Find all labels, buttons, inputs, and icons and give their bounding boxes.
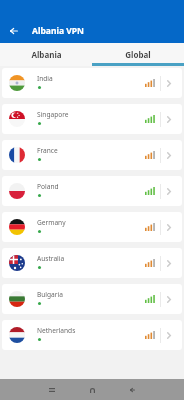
staticText: Poland — [37, 182, 59, 191]
staticText: Albania — [31, 49, 62, 60]
staticText: Singapore — [37, 110, 69, 119]
staticText: Germany — [37, 218, 66, 227]
button[interactable]: Home — [82, 380, 102, 400]
button[interactable]: France — [2, 140, 182, 170]
button[interactable]: Albania — [0, 43, 92, 66]
button[interactable]: Bulgaria — [2, 284, 182, 314]
button[interactable]: India — [2, 68, 182, 98]
staticText: India — [37, 74, 53, 83]
staticText: Albania VPN — [32, 25, 84, 37]
button[interactable]: Back — [122, 380, 142, 400]
button[interactable]: Netherlands — [2, 320, 182, 350]
button[interactable]: Global — [92, 43, 184, 66]
button[interactable]: Back — [0, 19, 24, 43]
button[interactable]: Australia — [2, 248, 182, 278]
staticText: Australia — [37, 254, 65, 263]
staticText: Global — [125, 49, 151, 60]
button[interactable]: Recent apps — [42, 380, 62, 400]
button[interactable]: Singapore — [2, 104, 182, 134]
staticText: Bulgaria — [37, 290, 63, 299]
staticText: France — [37, 146, 58, 155]
button[interactable]: Poland — [2, 176, 182, 206]
button[interactable]: Germany — [2, 212, 182, 242]
staticText: Netherlands — [37, 326, 76, 335]
